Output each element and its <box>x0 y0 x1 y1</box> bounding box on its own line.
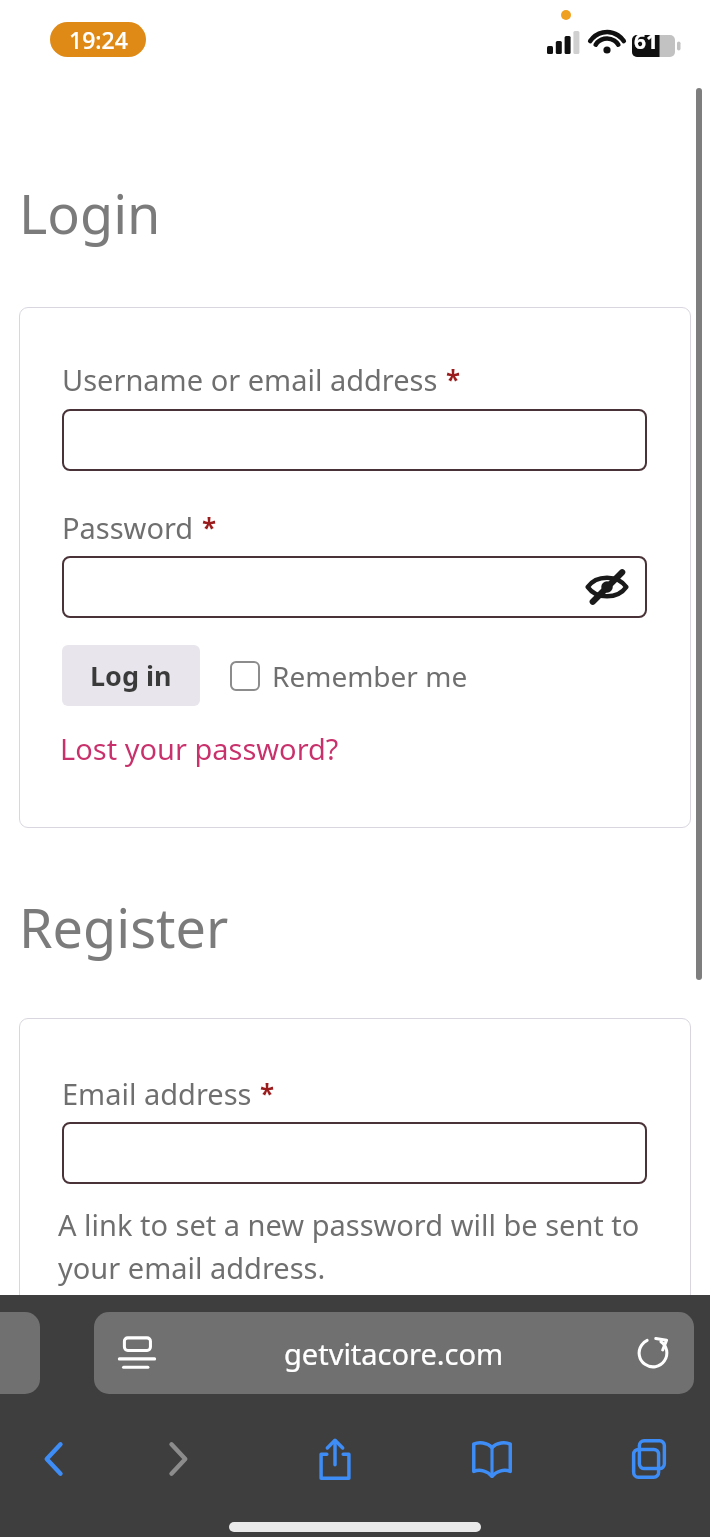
button[interactable]: Show password <box>62 556 647 618</box>
button[interactable]: Back <box>12 1416 98 1502</box>
staticText: Username or email address <box>62 360 438 399</box>
button[interactable]: Remember me <box>230 655 468 697</box>
staticText: Lost your password? <box>60 729 339 768</box>
button[interactable]: Tabs <box>606 1416 692 1502</box>
staticText: Login <box>19 176 161 250</box>
button[interactable] <box>62 409 647 471</box>
staticText: 19:24 <box>69 24 128 55</box>
staticText: * <box>446 362 461 397</box>
staticText: Register <box>19 890 229 964</box>
button[interactable]: Page settings <box>116 1332 158 1374</box>
staticText: Email address <box>62 1074 252 1113</box>
staticText: Remember me <box>272 657 468 695</box>
staticText: 61 <box>634 27 659 56</box>
button[interactable]: Page settings <box>94 1312 694 1394</box>
staticText: * <box>260 1076 275 1111</box>
staticText: A link to set a new password will be sen… <box>58 1205 640 1287</box>
staticText: Password <box>62 508 194 547</box>
button[interactable]: Forward <box>134 1416 220 1502</box>
button[interactable]: Share <box>292 1416 378 1502</box>
button[interactable]: Bookmarks <box>449 1416 535 1502</box>
button[interactable]: Previous tab <box>0 1312 40 1394</box>
staticText: getvitacore.com <box>284 1334 504 1373</box>
staticText: * <box>202 510 217 545</box>
button[interactable]: Log in <box>62 645 200 706</box>
button[interactable]: Lost your password? <box>60 729 339 768</box>
button[interactable]: Show password <box>584 564 630 610</box>
button[interactable] <box>62 1122 647 1184</box>
button[interactable]: Reload <box>632 1332 674 1374</box>
staticText: Log in <box>90 657 172 694</box>
